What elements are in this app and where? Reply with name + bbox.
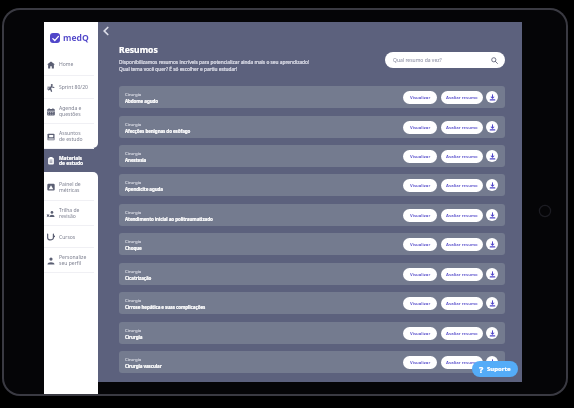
button[interactable]: Sprint 80/20	[44, 76, 98, 99]
staticText: ?	[479, 363, 484, 375]
button[interactable]: Home	[44, 53, 98, 76]
staticText: Visualizar	[410, 154, 431, 160]
staticText: Atendimento inicial ao politraumatizado	[125, 216, 213, 222]
button[interactable]: Cirurgia	[119, 174, 505, 196]
staticText: Cursos	[59, 234, 76, 241]
button[interactable]: Agenda e questões	[44, 99, 98, 124]
button[interactable]: Visualizar	[403, 150, 437, 163]
staticText: Avaliar resumo	[446, 95, 478, 101]
staticText: Avaliar resumo	[446, 301, 478, 307]
staticText: Suporte	[487, 365, 511, 373]
button[interactable]: Visualizar	[403, 91, 437, 104]
staticText: Avaliar resumo	[446, 213, 478, 219]
button[interactable]: Download	[486, 179, 498, 191]
staticText: Visualizar	[410, 301, 431, 307]
staticText: Cirurgia	[125, 297, 142, 303]
staticText: Trilha de revisão	[59, 207, 80, 220]
button[interactable]: Assuntos de estudo	[44, 124, 98, 149]
button[interactable]: Avaliar resumo	[441, 297, 483, 310]
staticText: Qual resumo da vez?	[393, 57, 442, 64]
staticText: Cirurgia	[125, 238, 142, 244]
button[interactable]: Download	[486, 268, 498, 280]
button[interactable]: Avaliar resumo	[441, 91, 483, 104]
staticText: medQ	[63, 32, 89, 44]
staticText: Materiais de estudo	[59, 155, 84, 167]
staticText: Resumos	[119, 44, 158, 56]
staticText: Cirurgia	[125, 91, 142, 97]
button[interactable]: Avaliar resumo	[441, 179, 483, 192]
staticText: Cirurgia	[125, 121, 142, 127]
staticText: Cirurgia	[125, 268, 142, 274]
button[interactable]: Visualizar	[403, 179, 437, 192]
button[interactable]: Avaliar resumo	[441, 150, 483, 163]
button[interactable]: Trilha de revisão	[44, 201, 98, 226]
button[interactable]: Cirurgia	[119, 263, 505, 285]
staticText: Avaliar resumo	[446, 242, 478, 248]
button[interactable]: Cirurgia	[119, 351, 505, 373]
button[interactable]: Avaliar resumo	[441, 356, 483, 369]
staticText: Visualizar	[410, 272, 431, 278]
button[interactable]: Cirurgia	[119, 322, 505, 344]
staticText: Sprint 80/20	[59, 84, 88, 91]
staticText: Disponibilizamos resumos incríveis para …	[119, 59, 310, 73]
button[interactable]: Visualizar	[403, 238, 437, 251]
button[interactable]: Visualizar	[403, 268, 437, 281]
staticText: Cirurgia	[125, 356, 142, 362]
button[interactable]: Cirurgia	[119, 292, 505, 314]
staticText: Cirrose hepática e suas complicações	[125, 304, 206, 310]
staticText: Choque	[125, 245, 142, 251]
button[interactable]: Cirurgia	[119, 145, 505, 167]
staticText: Cirurgia vascular	[125, 363, 162, 369]
staticText: Home	[59, 61, 74, 68]
button[interactable]: Painel de métricas	[44, 173, 98, 201]
button[interactable]: Avaliar resumo	[441, 327, 483, 340]
button[interactable]: Cursos	[44, 226, 98, 248]
staticText: Personalize seu perfil	[59, 254, 87, 267]
button[interactable]: Visualizar	[403, 356, 437, 369]
button[interactable]: Qual resumo da vez?	[385, 52, 505, 68]
button[interactable]: ?	[472, 361, 518, 377]
staticText: Visualizar	[410, 242, 431, 248]
button[interactable]: Avaliar resumo	[441, 121, 483, 134]
button[interactable]: Cirurgia	[119, 86, 505, 108]
button[interactable]: Download	[486, 150, 498, 162]
button[interactable]: Avaliar resumo	[441, 238, 483, 251]
staticText: Cirurgia	[125, 327, 142, 333]
button[interactable]: Back	[99, 24, 112, 37]
staticText: Abdome agudo	[125, 98, 159, 104]
staticText: Cirurgia	[125, 209, 142, 215]
staticText: Avaliar resumo	[446, 360, 478, 366]
button[interactable]: Visualizar	[403, 209, 437, 222]
staticText: Painel de métricas	[59, 181, 81, 194]
button[interactable]: Avaliar resumo	[441, 268, 483, 281]
staticText: Avaliar resumo	[446, 331, 478, 337]
button[interactable]: Personalize seu perfil	[44, 248, 98, 273]
staticText: Afecções benignas do esôfago	[125, 128, 191, 134]
button[interactable]: Cirurgia	[119, 204, 505, 226]
staticText: Visualizar	[410, 125, 431, 131]
staticText: Avaliar resumo	[446, 154, 478, 160]
button[interactable]: Materiais de estudo	[44, 149, 98, 173]
staticText: Avaliar resumo	[446, 183, 478, 189]
button[interactable]: Download	[486, 297, 498, 309]
button[interactable]: Visualizar	[403, 297, 437, 310]
staticText: Visualizar	[410, 95, 431, 101]
button[interactable]: Download	[486, 356, 498, 368]
button[interactable]: Download	[486, 327, 498, 339]
staticText: Avaliar resumo	[446, 125, 478, 131]
button[interactable]: Visualizar	[403, 121, 437, 134]
button[interactable]: Cirurgia	[119, 116, 505, 138]
button[interactable]: Download	[486, 238, 498, 250]
staticText: Anestesia	[125, 157, 147, 163]
button[interactable]: Download	[486, 209, 498, 221]
staticText: Cirurgia	[125, 150, 142, 156]
button[interactable]: Download	[486, 91, 498, 103]
button[interactable]: Visualizar	[403, 327, 437, 340]
staticText: Visualizar	[410, 331, 431, 337]
button[interactable]: Cirurgia	[119, 233, 505, 255]
button[interactable]: Download	[486, 121, 498, 133]
staticText: Visualizar	[410, 213, 431, 219]
staticText: Apendicite aguda	[125, 186, 163, 192]
staticText: Avaliar resumo	[446, 272, 478, 278]
button[interactable]: Avaliar resumo	[441, 209, 483, 222]
